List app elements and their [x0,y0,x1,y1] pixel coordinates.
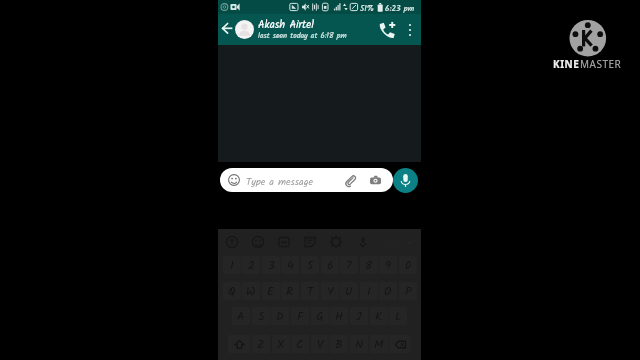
staticText: N [355,335,364,353]
staticText: E [267,282,275,300]
button[interactable]: P [399,282,417,300]
button[interactable]: Shift [228,335,250,353]
button[interactable]: 8 [360,256,378,274]
button[interactable]: M [370,335,388,353]
staticText: KINE [553,57,580,71]
button[interactable]: Call [378,21,396,39]
button[interactable]: Q [223,282,241,300]
staticText: 1 [230,256,234,274]
button[interactable]: U [340,282,358,300]
staticText: W [246,282,256,300]
staticText: Y [327,282,334,300]
staticText: 51% [360,2,374,15]
button[interactable]: B [330,335,348,353]
staticText: P [405,282,412,300]
button[interactable]: G [311,307,329,325]
staticText: last seen today at 6:18 pm [258,30,347,42]
staticText: 9 [385,256,391,274]
staticText: U [345,282,353,300]
button[interactable]: N [350,335,368,353]
button[interactable]: Google voice typing [225,235,239,249]
staticText: T [307,282,314,300]
button[interactable]: Z [252,335,270,353]
staticText: Q [228,282,236,300]
button[interactable]: A [232,307,250,325]
staticText: 4 [287,256,294,274]
button[interactable]: Profile photo [235,20,254,39]
staticText: K [375,307,383,325]
button[interactable]: K [370,307,388,325]
staticText: I [367,282,371,300]
staticText: R [286,282,294,300]
button[interactable]: Camera [369,174,382,187]
staticText: L [395,307,402,325]
staticText: 8 [365,256,373,274]
staticText: 6 [327,256,334,274]
button[interactable]: W [242,282,260,300]
button[interactable]: Backspace [389,335,411,353]
button[interactable]: R [281,282,299,300]
button[interactable]: O [379,282,397,300]
staticText: MASTER [580,57,622,71]
staticText: 0 [405,256,412,274]
staticText: C [296,335,304,353]
button[interactable]: Settings [329,235,343,249]
button[interactable]: More options [403,19,417,41]
staticText: F [297,307,304,325]
staticText: Akash Airtel [258,17,314,34]
button[interactable]: 0 [399,256,417,274]
button[interactable]: Emoji [228,174,240,186]
staticText: V [317,335,324,353]
staticText: 5 [307,256,314,274]
button[interactable] [220,168,393,192]
staticText: Type a message [246,174,313,190]
staticText: D [276,307,284,325]
button[interactable]: E [262,282,280,300]
staticText: X [277,335,285,353]
staticText: M [374,335,384,353]
button[interactable]: H [330,307,348,325]
button[interactable]: Emoji [251,235,265,249]
button[interactable]: Voice input [356,235,370,249]
button[interactable]: Attach [344,174,357,187]
staticText: G [316,307,324,325]
staticText: H [335,307,344,325]
staticText: A [237,307,245,325]
staticText: Z [257,335,265,353]
button[interactable]: Stickers [303,235,317,249]
staticText: 2 [248,256,255,274]
staticText: 7 [346,256,352,274]
button[interactable]: Record voice message [393,168,418,193]
staticText: O [384,282,392,300]
staticText: B [335,335,343,353]
staticText: 6:23 pm [385,2,415,15]
staticText: S [258,307,265,325]
staticText: J [356,307,362,325]
button[interactable]: Back [218,14,235,45]
button[interactable]: D [271,307,289,325]
staticText: 3 [268,256,275,274]
button[interactable]: Clipboard [277,235,291,249]
